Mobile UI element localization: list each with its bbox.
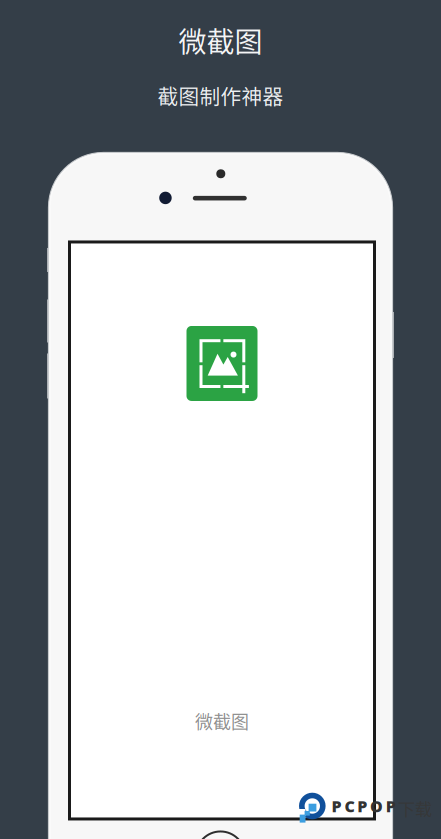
staticText: 截图制作神器 (157, 80, 283, 110)
staticText: 下载 (398, 796, 432, 821)
staticText: PCPOP (332, 795, 396, 817)
staticText: 微截图 (178, 20, 262, 60)
staticText: 微截图 (195, 708, 249, 734)
